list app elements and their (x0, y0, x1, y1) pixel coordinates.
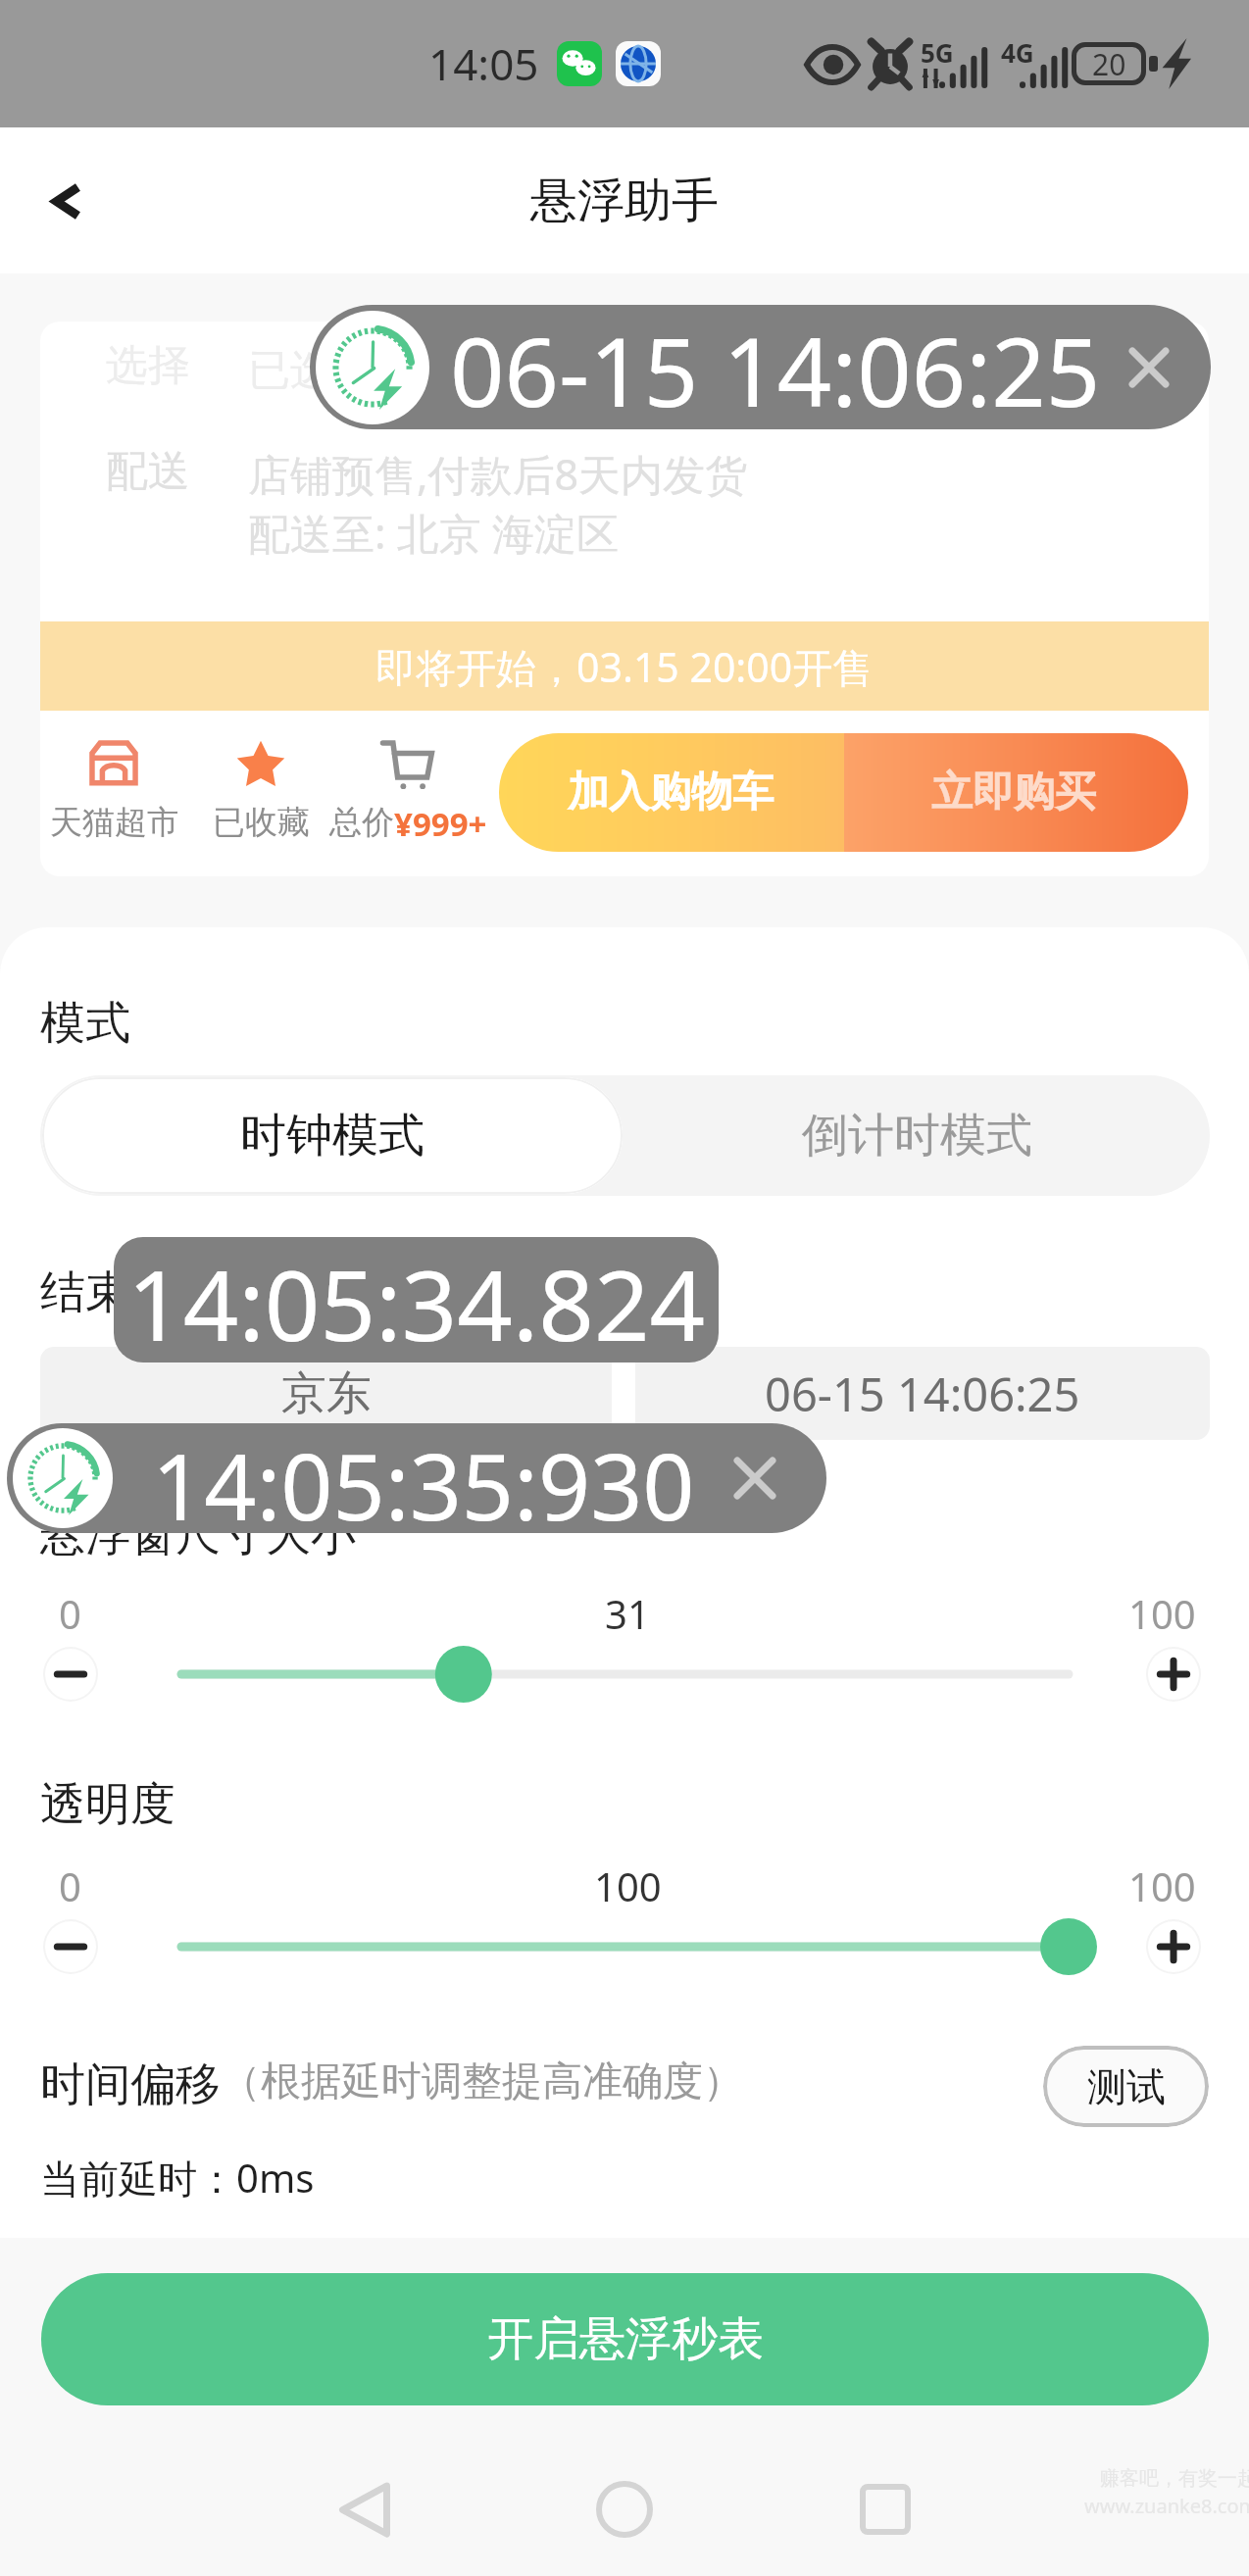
button[interactable]: 06-15 14:06:25 (635, 1347, 1210, 1440)
staticText: 100 (594, 1859, 662, 1912)
staticText: 06-15 14:06:25 (450, 305, 1101, 429)
staticText: 14:05 (428, 34, 539, 93)
staticText: 06-15 14:06:25 (765, 1362, 1080, 1425)
staticText: 倒计时模式 (802, 1107, 1032, 1164)
button[interactable]: 已收藏 (207, 735, 315, 843)
staticText: 京东 (281, 1365, 372, 1422)
button[interactable]: 14:05:34.824 (114, 1237, 719, 1362)
staticText: 时间偏移 (40, 2056, 221, 2113)
button[interactable]: Back (316, 2460, 414, 2558)
staticText: 选择 (106, 339, 190, 392)
staticText: 0 (59, 1859, 81, 1912)
button[interactable]: 06-15 14:06:25 (310, 305, 1211, 429)
button[interactable]: Back (25, 159, 109, 243)
button[interactable]: Increase (1138, 1911, 1209, 1982)
staticText: 立即购买 (931, 767, 1096, 818)
staticText: 店铺预售,付款后8天内发货 (248, 445, 748, 503)
button[interactable]: Recent apps (836, 2460, 934, 2558)
button[interactable]: 天猫超市 (50, 735, 177, 843)
staticText: 时钟模式 (240, 1107, 425, 1164)
staticText: 配送至: 北京 海淀区 (248, 504, 619, 562)
staticText: 悬浮助手 (530, 172, 719, 230)
staticText: 悬浮窗尺寸大小 (40, 1507, 356, 1563)
staticText: ¥999+ (394, 802, 487, 846)
button[interactable]: Decrease (35, 1911, 106, 1982)
staticText: 天猫超市 (50, 802, 177, 843)
staticText: 已收藏 (213, 802, 310, 843)
staticText: 配送 (106, 445, 190, 498)
staticText: 100 (1128, 1587, 1196, 1640)
staticText: 5G (921, 35, 954, 70)
staticText: 31 (605, 1587, 650, 1640)
staticText: 20 (1092, 44, 1126, 84)
staticText: 赚客吧，有奖一起赚！ (1100, 2466, 1249, 2491)
button[interactable]: 开启悬浮秒表 (41, 2273, 1209, 2405)
button[interactable]: 总价 (325, 735, 491, 846)
staticText: 透明度 (40, 1776, 175, 1833)
button[interactable]: 加入购物车 (499, 733, 1188, 852)
staticText: 当前延时：0ms (40, 2151, 315, 2204)
button[interactable]: 京东 (40, 1347, 612, 1440)
button[interactable]: 测试 (1043, 2046, 1209, 2127)
staticText: 14:05:35:930 (152, 1423, 695, 1533)
staticText: 已选 蓝色 (248, 339, 439, 397)
staticText: 0 (59, 1587, 81, 1640)
staticText: 结束时间 (40, 1264, 221, 1321)
staticText: 100 (1128, 1859, 1196, 1912)
button[interactable]: Close (724, 1447, 786, 1510)
staticText: （根据延时调整提高准确度） (221, 2056, 743, 2107)
button[interactable]: 时钟模式 (42, 1077, 623, 1194)
staticText: 加入购物车 (568, 767, 774, 818)
button[interactable]: 14:05:35:930 (7, 1423, 826, 1533)
staticText: 4G (1001, 35, 1034, 70)
staticText: 14:05:34.824 (127, 1237, 706, 1362)
staticText: 总价 (329, 802, 394, 843)
button[interactable]: Increase (1138, 1639, 1209, 1709)
button[interactable]: 倒计时模式 (624, 1075, 1210, 1196)
staticText: 即将开始，03.15 20:00开售 (375, 639, 874, 694)
button[interactable]: Close (1115, 333, 1183, 402)
staticText: 开启悬浮秒表 (487, 2310, 764, 2368)
button[interactable]: Decrease (35, 1639, 106, 1709)
staticText: 模式 (40, 995, 130, 1052)
staticText: 测试 (1087, 2062, 1166, 2111)
staticText: www.zuanke8.com (1084, 2493, 1249, 2519)
button[interactable]: Home (575, 2460, 674, 2558)
